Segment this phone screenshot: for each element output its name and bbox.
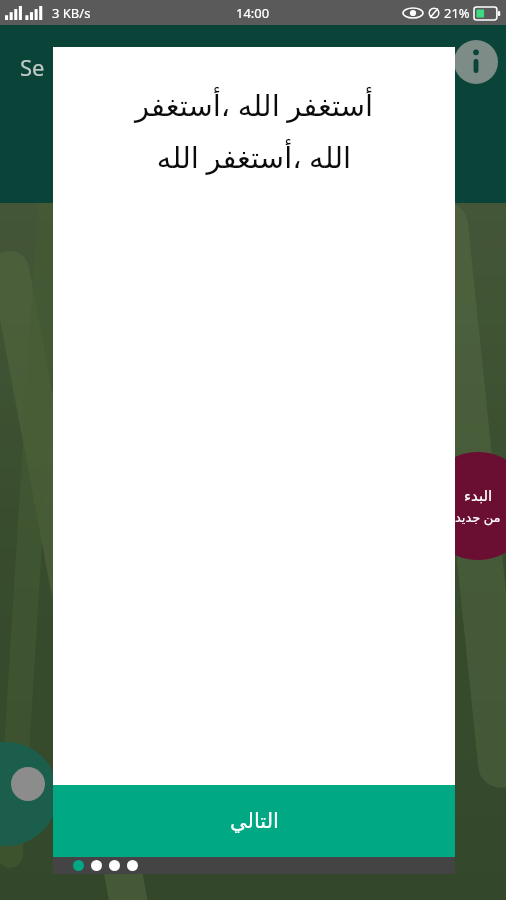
staticText: البدء bbox=[464, 487, 493, 504]
staticText: 14:00 bbox=[236, 4, 270, 22]
staticText: التالي bbox=[230, 809, 279, 833]
staticText: 21% bbox=[444, 4, 470, 22]
staticText: من جديد bbox=[455, 508, 501, 526]
button[interactable] bbox=[0, 742, 58, 846]
staticText: 3 KB/s bbox=[52, 4, 91, 22]
staticText: أستغفر الله ،أستغفر الله ،أستغفر الله bbox=[81, 85, 427, 177]
button[interactable]: التالي bbox=[53, 785, 455, 857]
staticText: Se bbox=[20, 52, 45, 82]
button[interactable]: Info bbox=[452, 38, 500, 86]
button[interactable]: البدء bbox=[424, 452, 506, 560]
